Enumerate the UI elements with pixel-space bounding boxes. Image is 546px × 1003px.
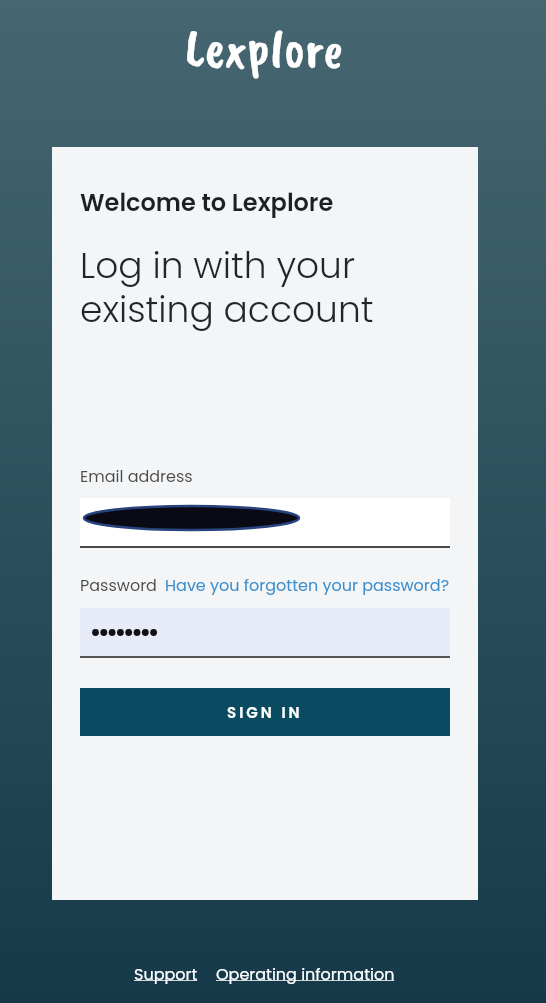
button[interactable]: Have you forgotten your password? bbox=[165, 574, 450, 596]
button[interactable]: SIGN IN bbox=[80, 688, 450, 736]
button[interactable]: Support bbox=[134, 963, 202, 985]
staticText: Log in with your existing account bbox=[80, 240, 374, 335]
button[interactable] bbox=[80, 608, 450, 656]
staticText: SIGN IN bbox=[227, 702, 303, 723]
staticText: Password bbox=[80, 574, 157, 596]
button[interactable] bbox=[80, 498, 450, 546]
staticText: Lexplore bbox=[185, 14, 343, 82]
staticText: Email address bbox=[80, 465, 193, 487]
button[interactable]: Operating information bbox=[216, 963, 395, 985]
staticText: Welcome to Lexplore bbox=[80, 186, 334, 220]
